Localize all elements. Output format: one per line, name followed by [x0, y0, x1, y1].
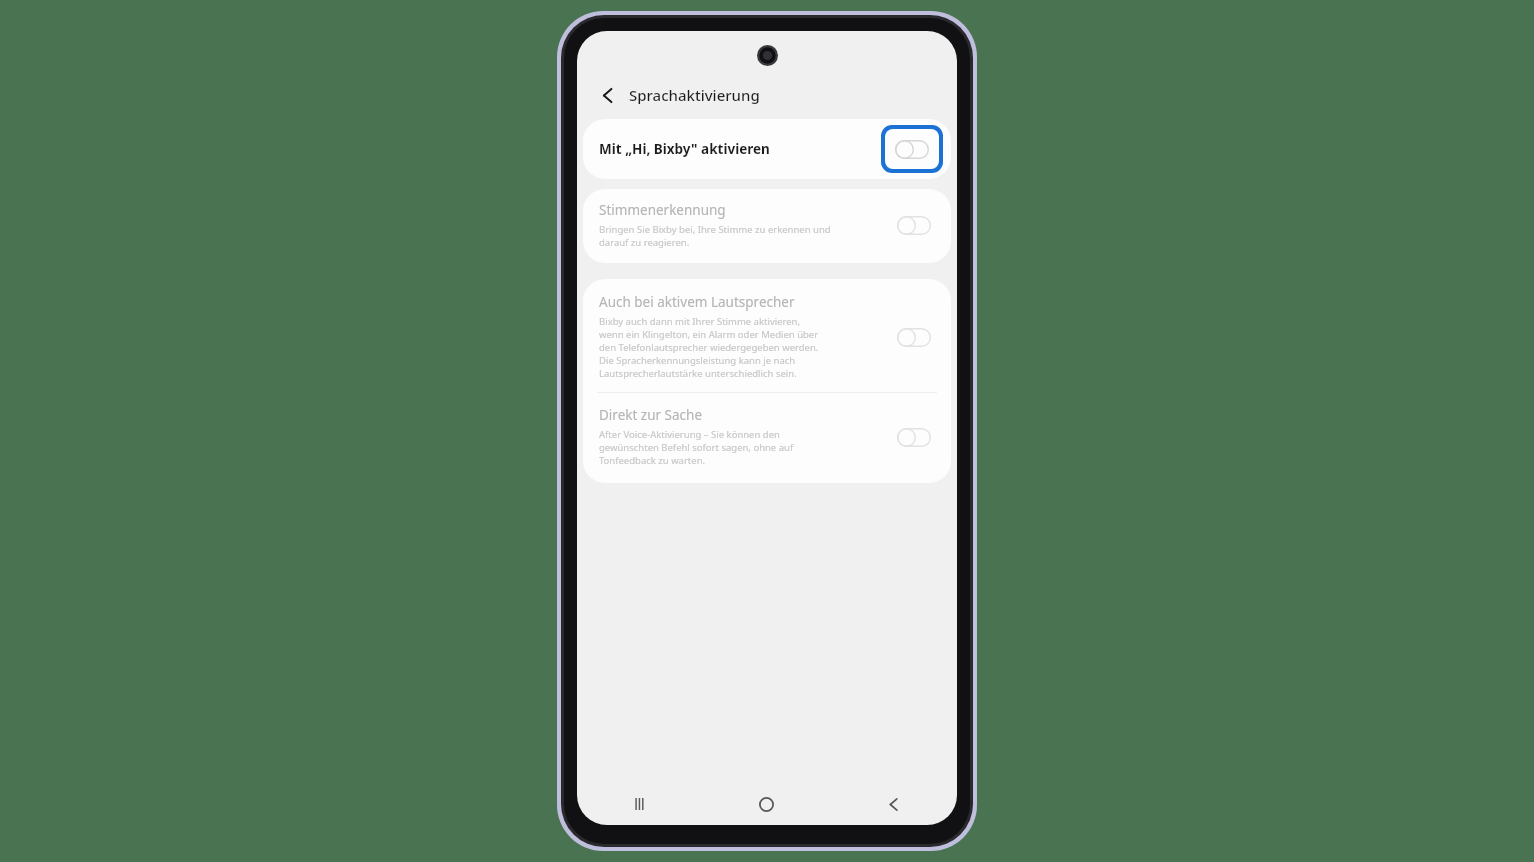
staticText: Auch bei aktivem Lautsprecher: [599, 293, 795, 311]
button[interactable]: Auch bei aktivem Lautsprecher: [583, 279, 951, 392]
staticText: Bringen Sie Bixby bei, Ihre Stimme zu er…: [599, 223, 831, 249]
button[interactable]: Startbildschirm: [703, 783, 830, 825]
staticText: Mit „Hi, Bixby" aktivieren: [599, 140, 881, 158]
button[interactable]: Mit „Hi, Bixby" aktivieren: [583, 119, 951, 179]
button[interactable]: Direkt zur Sache umschalten: [891, 417, 937, 457]
button[interactable]: Zurück: [593, 81, 621, 109]
button[interactable]: Zurück: [830, 783, 957, 825]
button[interactable]: Stimmenerkennung umschalten: [891, 205, 937, 245]
staticText: Stimmenerkennung: [599, 201, 726, 219]
button[interactable]: Auch bei aktivem Lautsprecher umschalten: [891, 317, 937, 357]
staticText: Direkt zur Sache: [599, 406, 703, 424]
staticText: After Voice-Aktivierung – Sie können den…: [599, 428, 794, 467]
button[interactable]: Letzte Apps: [577, 783, 703, 825]
button[interactable]: Mit Hi Bixby aktivieren umschalten: [885, 129, 939, 169]
staticText: Bixby auch dann mit Ihrer Stimme aktivie…: [599, 315, 819, 380]
button[interactable]: Direkt zur Sache: [583, 393, 951, 483]
staticText: Sprachaktivierung: [629, 85, 760, 105]
button[interactable]: Stimmenerkennung: [583, 189, 951, 263]
